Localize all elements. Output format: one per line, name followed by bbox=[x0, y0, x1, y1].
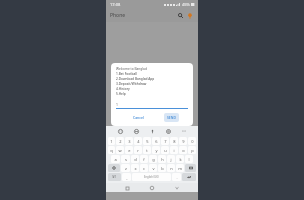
button[interactable]: b bbox=[158, 164, 166, 172]
staticText: h bbox=[161, 157, 164, 162]
button[interactable]: Settings bbox=[164, 127, 172, 135]
button[interactable]: g bbox=[149, 155, 157, 163]
button[interactable]: SEND bbox=[164, 113, 179, 122]
staticText: d bbox=[134, 157, 137, 162]
button[interactable]: Translate bbox=[132, 127, 140, 135]
button[interactable]: 3 bbox=[125, 137, 133, 145]
staticText: 1 bbox=[116, 102, 118, 107]
staticText: j bbox=[170, 157, 172, 162]
button[interactable]: Voice input bbox=[148, 127, 156, 135]
button[interactable]: 7 bbox=[161, 137, 169, 145]
button[interactable]: k bbox=[176, 155, 184, 163]
staticText: o bbox=[182, 148, 185, 153]
button[interactable]: s bbox=[121, 155, 130, 163]
button[interactable]: m bbox=[176, 164, 184, 172]
button[interactable]: , bbox=[122, 173, 131, 181]
button[interactable]: 6 bbox=[152, 137, 160, 145]
button[interactable]: p bbox=[188, 146, 196, 154]
button[interactable]: r bbox=[134, 146, 142, 154]
button[interactable]: 5 bbox=[143, 137, 151, 145]
button[interactable]: n bbox=[167, 164, 175, 172]
button[interactable]: 0 bbox=[188, 137, 196, 145]
staticText: 3 bbox=[128, 139, 131, 144]
staticText: Phone bbox=[110, 12, 126, 19]
button[interactable]: 9 bbox=[179, 137, 187, 145]
staticText: 9 bbox=[182, 139, 185, 144]
button[interactable]: c bbox=[140, 164, 148, 172]
button[interactable]: !#1 bbox=[108, 173, 121, 181]
button[interactable]: y bbox=[152, 146, 160, 154]
staticText: l bbox=[188, 157, 190, 162]
staticText: 5.Help bbox=[116, 92, 126, 96]
button[interactable]: English (UK) bbox=[132, 173, 171, 181]
staticText: p bbox=[191, 148, 194, 153]
staticText: f bbox=[143, 157, 145, 162]
staticText: 7 bbox=[164, 139, 167, 144]
button[interactable]: j bbox=[167, 155, 175, 163]
button[interactable]: l bbox=[185, 155, 193, 163]
staticText: 2 bbox=[119, 139, 122, 144]
staticText: z bbox=[125, 166, 127, 171]
button[interactable]: a bbox=[111, 155, 120, 163]
button[interactable]: u bbox=[161, 146, 169, 154]
staticText: Cancel bbox=[133, 115, 144, 120]
button[interactable]: Recents bbox=[123, 184, 131, 192]
button[interactable]: Cancel bbox=[130, 113, 147, 122]
staticText: m bbox=[178, 166, 182, 171]
staticText: k bbox=[179, 157, 182, 162]
button[interactable]: 8 bbox=[170, 137, 178, 145]
staticText: !#1 bbox=[112, 175, 117, 179]
staticText: q bbox=[110, 148, 113, 153]
button[interactable]: Home bbox=[148, 184, 156, 192]
button[interactable]: w bbox=[116, 146, 124, 154]
button[interactable]: Account bbox=[185, 11, 194, 20]
staticText: a bbox=[114, 157, 117, 162]
staticText: w bbox=[118, 148, 122, 153]
button[interactable]: More options bbox=[180, 127, 188, 135]
button[interactable]: o bbox=[179, 146, 187, 154]
staticText: 45% bbox=[182, 2, 190, 7]
staticText: 8 bbox=[173, 139, 176, 144]
button[interactable]: t bbox=[143, 146, 151, 154]
staticText: 5 bbox=[146, 139, 149, 144]
button[interactable]: Emoji bbox=[116, 127, 124, 135]
staticText: v bbox=[152, 166, 155, 171]
button[interactable]: 4 bbox=[134, 137, 142, 145]
button[interactable]: e bbox=[125, 146, 133, 154]
staticText: b bbox=[161, 166, 164, 171]
button[interactable]: Search bbox=[176, 11, 185, 20]
button[interactable]: f bbox=[140, 155, 148, 163]
staticText: 17:08 bbox=[110, 2, 121, 7]
button[interactable]: 1 bbox=[108, 137, 115, 145]
button[interactable]: Shift bbox=[108, 164, 120, 172]
staticText: 1.Bet Football bbox=[116, 72, 137, 76]
button[interactable]: d bbox=[131, 155, 139, 163]
button[interactable]: Back bbox=[173, 184, 181, 192]
button[interactable]: z bbox=[121, 164, 130, 172]
button[interactable]: v bbox=[149, 164, 157, 172]
staticText: e bbox=[128, 148, 131, 153]
button[interactable]: 2 bbox=[116, 137, 124, 145]
staticText: s bbox=[125, 157, 127, 162]
staticText: t bbox=[146, 148, 148, 153]
button[interactable]: 1 bbox=[116, 102, 188, 109]
button[interactable]: x bbox=[131, 164, 139, 172]
staticText: English (UK) bbox=[144, 175, 159, 179]
button[interactable]: i bbox=[170, 146, 178, 154]
button[interactable]: Enter bbox=[182, 173, 196, 181]
staticText: 0 bbox=[191, 139, 194, 144]
staticText: 6 bbox=[155, 139, 158, 144]
staticText: SEND bbox=[167, 115, 176, 120]
staticText: 4.History bbox=[116, 87, 130, 91]
staticText: c bbox=[143, 166, 145, 171]
staticText: i bbox=[173, 148, 175, 153]
button[interactable]: q bbox=[108, 146, 115, 154]
button[interactable]: h bbox=[158, 155, 166, 163]
staticText: , bbox=[126, 175, 128, 180]
button[interactable]: Backspace bbox=[185, 164, 196, 172]
staticText: 4 bbox=[137, 139, 140, 144]
staticText: 1 bbox=[110, 139, 113, 144]
staticText: n bbox=[170, 166, 173, 171]
staticText: Welcome to Banglad bbox=[116, 67, 147, 71]
